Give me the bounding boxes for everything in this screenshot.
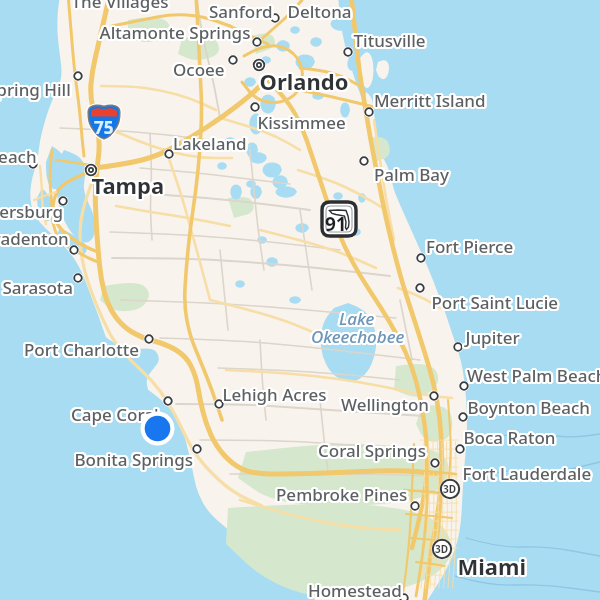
button[interactable]: Map of Florida [0, 0, 600, 600]
